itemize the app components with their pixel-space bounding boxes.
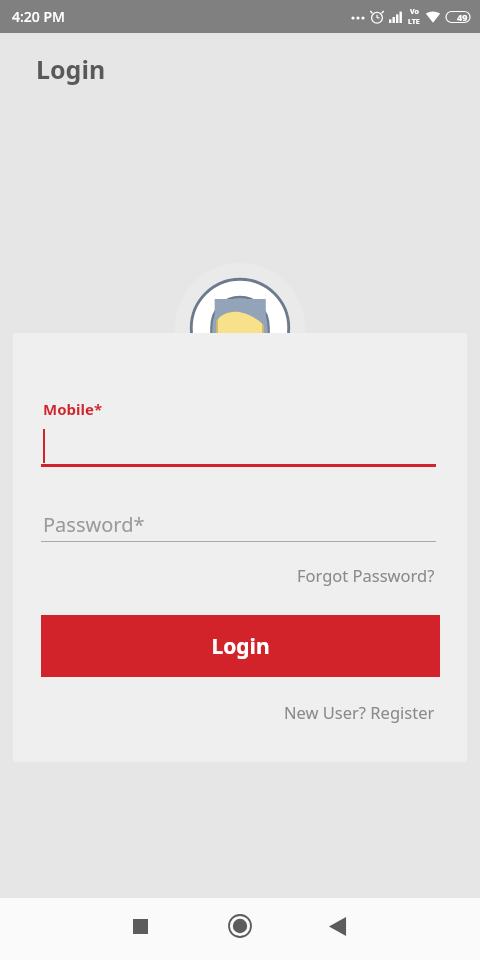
staticText: Vo <box>410 7 419 17</box>
staticText: LTE <box>408 17 420 27</box>
button[interactable]: Back <box>309 898 365 954</box>
button[interactable]: Recent apps <box>112 898 168 954</box>
staticText: 4:20 PM <box>12 7 65 26</box>
staticText: 49 <box>457 11 468 23</box>
staticText: Mobile* <box>43 399 103 419</box>
staticText: Password* <box>43 511 145 538</box>
staticText: Login <box>211 632 270 661</box>
staticText: Forgot Password? <box>297 564 435 586</box>
staticText: New User? Register <box>284 701 435 723</box>
button[interactable]: Login <box>41 615 440 677</box>
button[interactable]: Password* <box>43 506 438 542</box>
button[interactable]: Forgot Password? <box>275 559 440 591</box>
button[interactable]: Home <box>212 898 268 954</box>
button[interactable]: New User? Register <box>258 696 440 728</box>
staticText: Login <box>36 52 106 86</box>
